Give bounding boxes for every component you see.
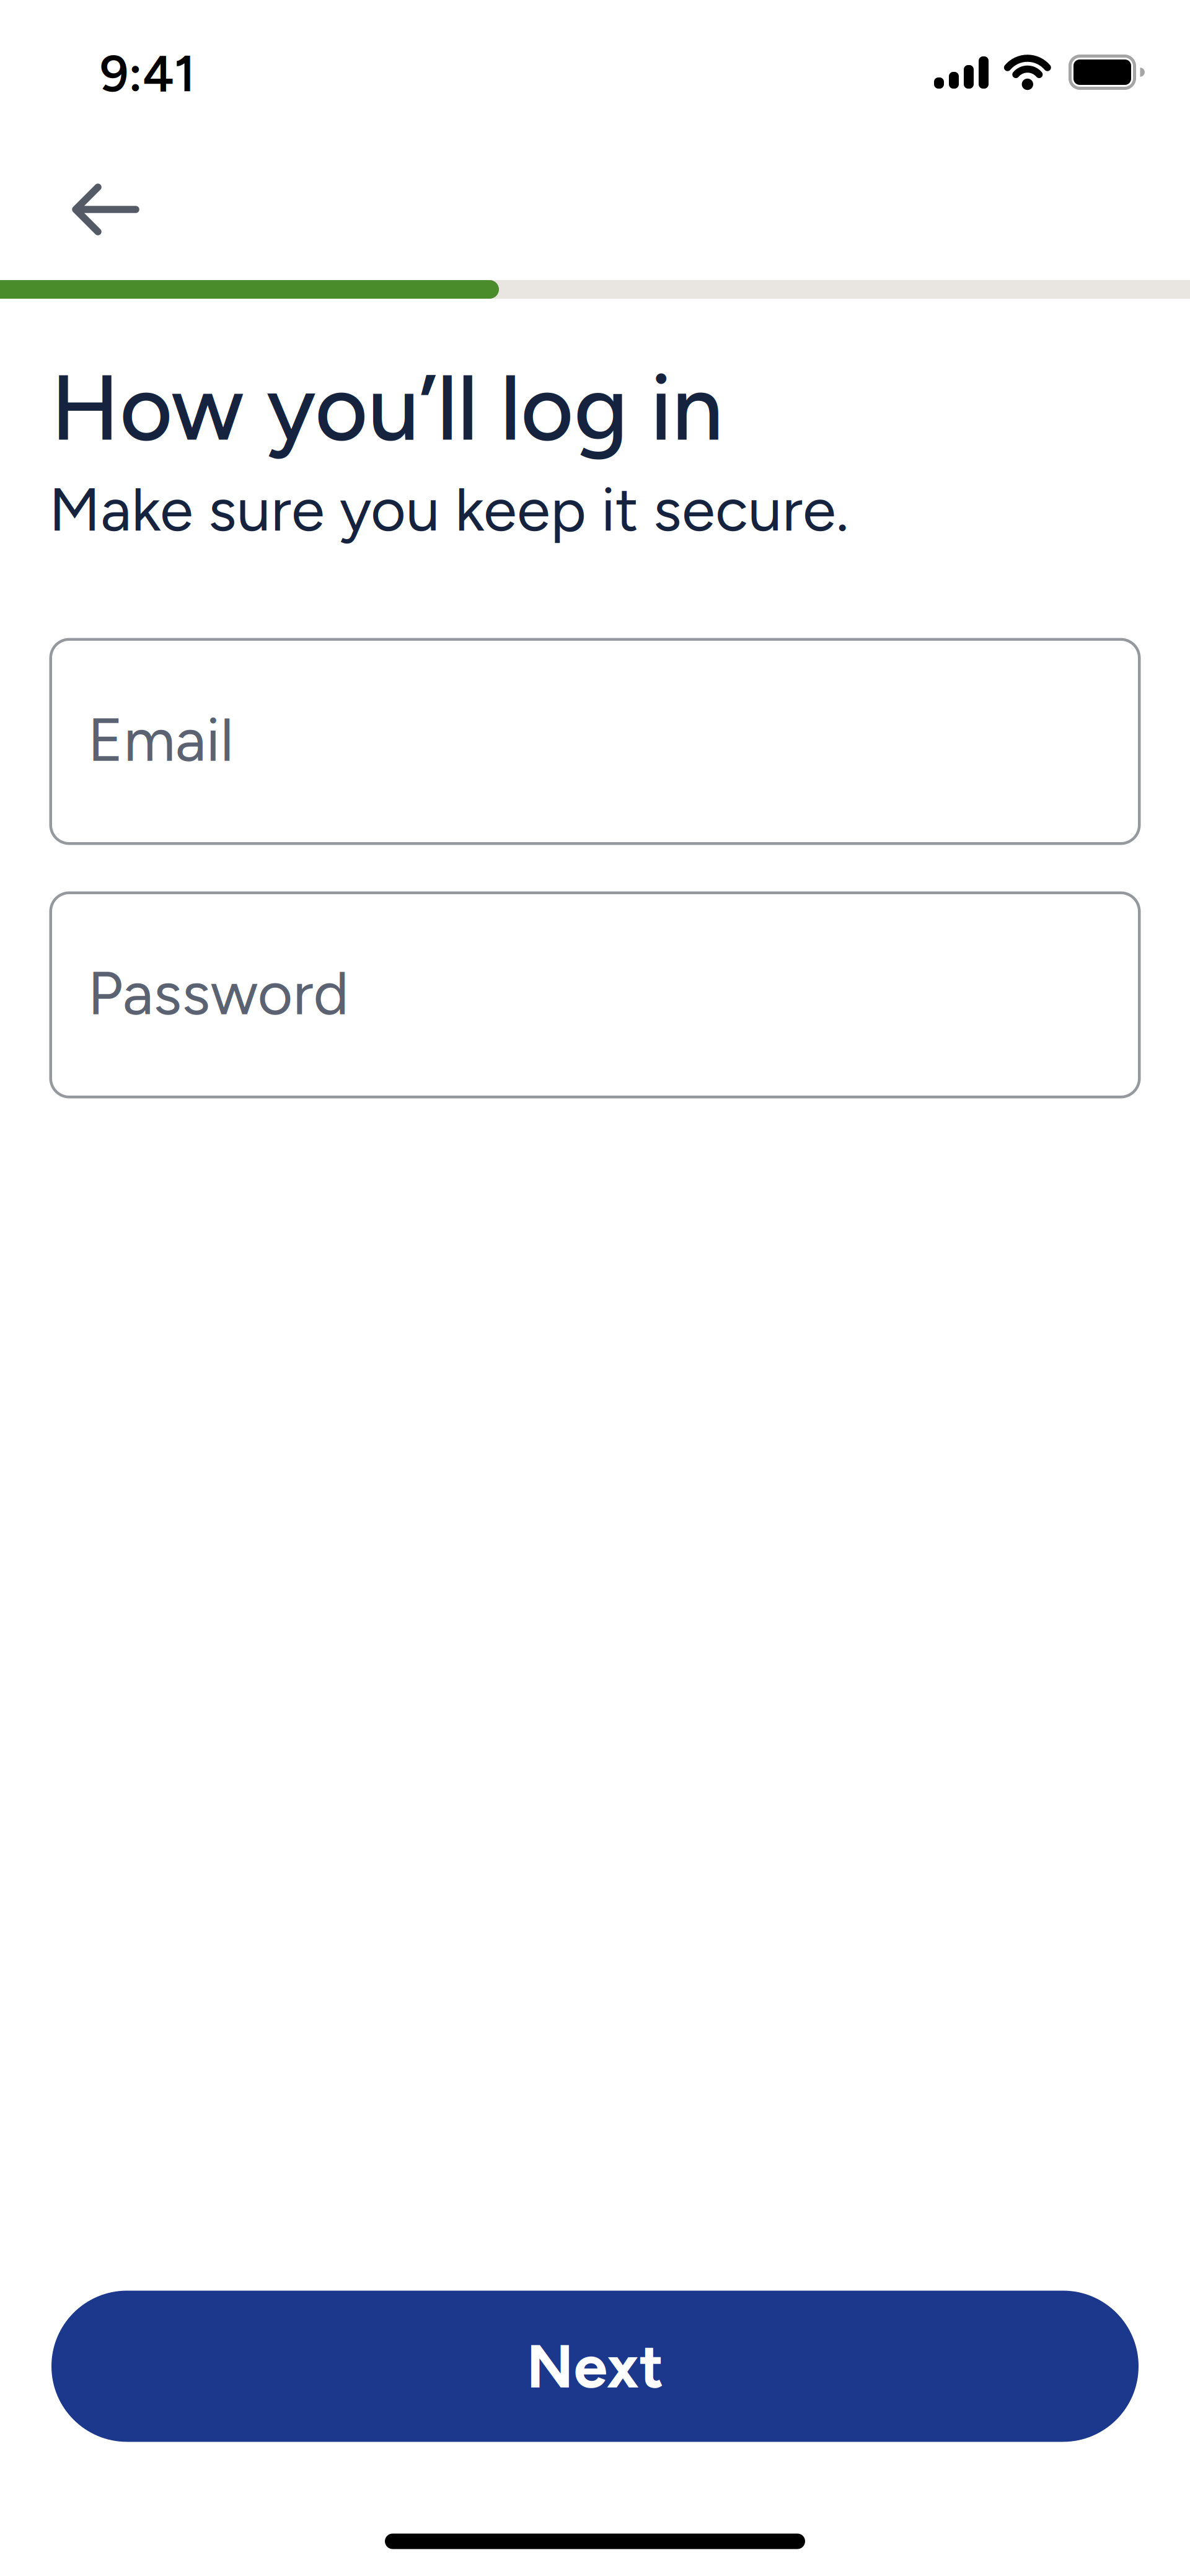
staticText: Email [88,703,234,776]
staticText: Password [88,957,349,1029]
staticText: Make sure you keep it secure. [49,473,848,546]
staticText: Next [527,2330,663,2403]
button[interactable]: Email [49,638,1141,845]
staticText: 9:41 [100,44,195,104]
button[interactable]: Next [51,2291,1139,2442]
staticText: How you’ll log in [51,353,723,463]
button[interactable]: Password [49,891,1141,1098]
button[interactable]: Back [53,166,158,253]
